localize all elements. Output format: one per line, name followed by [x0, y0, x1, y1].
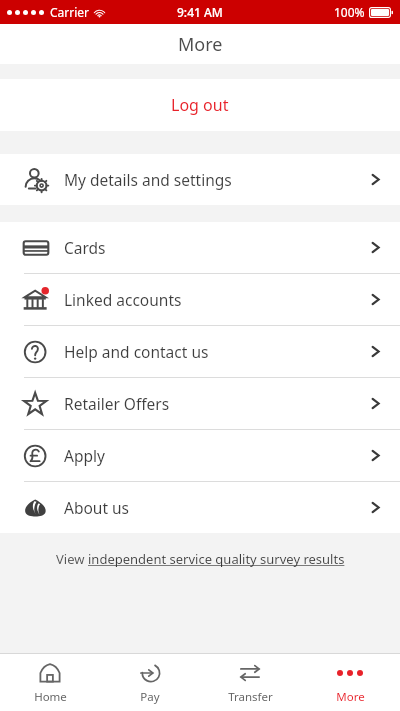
staticText: More [336, 689, 365, 705]
button[interactable]: Pay [100, 654, 200, 711]
staticText: Home [34, 689, 67, 705]
button[interactable]: Apply [0, 430, 400, 481]
button[interactable]: View [0, 533, 400, 585]
staticText: 9:41 AM [177, 4, 223, 20]
staticText: My details and settings [64, 169, 232, 190]
staticText: independent service quality survey resul… [88, 550, 345, 568]
staticText: About us [64, 497, 130, 518]
button[interactable]: Home [0, 654, 100, 711]
staticText: Linked accounts [64, 289, 182, 310]
staticText: Apply [64, 445, 105, 466]
staticText: Help and contact us [64, 341, 209, 362]
staticText: Log out [171, 94, 229, 116]
button[interactable]: Cards [0, 222, 400, 273]
button[interactable]: About us [0, 482, 400, 533]
staticText: Transfer [228, 689, 273, 705]
button[interactable]: Transfer [200, 654, 300, 711]
staticText: More [178, 32, 223, 57]
button[interactable]: Log out [0, 79, 400, 131]
button[interactable]: Retailer Offers [0, 378, 400, 429]
staticText: Carrier [50, 4, 90, 20]
button[interactable]: Linked accounts [0, 274, 400, 325]
staticText: Cards [64, 237, 106, 258]
button[interactable]: Help and contact us [0, 326, 400, 377]
staticText: 100% [334, 4, 365, 20]
button[interactable]: My details and settings [0, 154, 400, 205]
staticText: Pay [140, 689, 160, 705]
staticText: Retailer Offers [64, 393, 170, 414]
button[interactable]: More [300, 654, 400, 711]
staticText: View [56, 550, 88, 568]
